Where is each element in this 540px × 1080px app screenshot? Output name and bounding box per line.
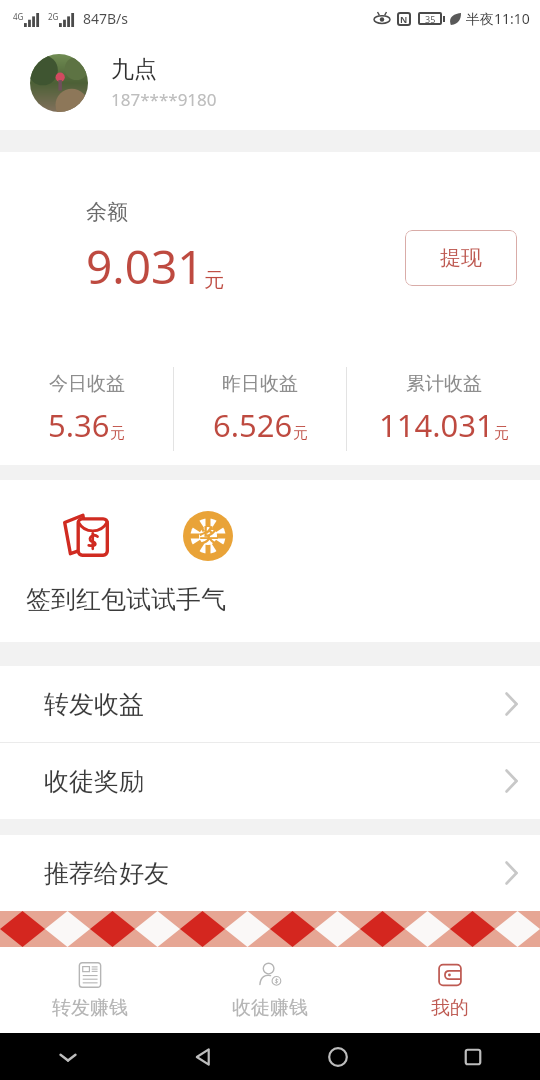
other: Recent apps [462, 1046, 484, 1068]
button[interactable]: 累计收益 [347, 372, 540, 446]
staticText: 试试手气 [126, 584, 226, 615]
staticText: 元 [494, 424, 509, 443]
other: Back [192, 1046, 214, 1068]
staticText: 转发赚钱 [52, 996, 128, 1020]
staticText: 元 [293, 424, 308, 443]
staticText: 9.031 [86, 235, 204, 298]
button[interactable]: 转发收益 [0, 666, 540, 742]
staticText: 转发收益 [44, 689, 144, 720]
staticText: 奖 [199, 524, 218, 548]
staticText: 847B/s [83, 9, 129, 28]
staticText: 187****9180 [111, 88, 217, 111]
staticText: 半夜11:10 [466, 9, 530, 28]
button[interactable]: 收徒赚钱 [180, 947, 360, 1033]
staticText: 6.526 [213, 404, 293, 446]
staticText: 35 [425, 13, 436, 25]
staticText: 114.031 [379, 404, 494, 446]
staticText: 2G [48, 11, 59, 22]
staticText: 元 [204, 268, 224, 293]
staticText: 收徒赚钱 [232, 996, 308, 1020]
staticText: 我的 [431, 996, 469, 1020]
staticText: 元 [110, 424, 125, 443]
other: Hide keyboard [57, 1046, 79, 1068]
staticText: 5.36 [48, 404, 110, 446]
staticText: 累计收益 [406, 372, 482, 396]
button[interactable]: 转发赚钱 [0, 947, 180, 1033]
staticText: 余额 [86, 199, 128, 225]
staticText: 签到红包 [26, 584, 126, 615]
button[interactable]: 九点 [0, 36, 540, 130]
other: Home [327, 1046, 349, 1068]
staticText: 4G [13, 11, 24, 22]
button[interactable]: 我的 [360, 947, 540, 1033]
staticText: N [400, 13, 408, 25]
staticText: 九点 [111, 55, 157, 84]
button[interactable]: 提现 [405, 230, 517, 286]
button[interactable]: 签到红包 [56, 506, 116, 566]
staticText: 推荐给好友 [44, 858, 169, 889]
button[interactable]: 今日收益 [0, 372, 173, 446]
staticText: 收徒奖励 [44, 766, 144, 797]
staticText: 昨日收益 [222, 372, 298, 396]
staticText: 今日收益 [49, 372, 125, 396]
staticText: 提现 [440, 245, 482, 271]
button[interactable]: 推荐给好友 [0, 835, 540, 911]
button[interactable]: 昨日收益 [174, 372, 346, 446]
button[interactable]: 收徒奖励 [0, 743, 540, 819]
button[interactable]: 试试手气 [179, 507, 237, 565]
